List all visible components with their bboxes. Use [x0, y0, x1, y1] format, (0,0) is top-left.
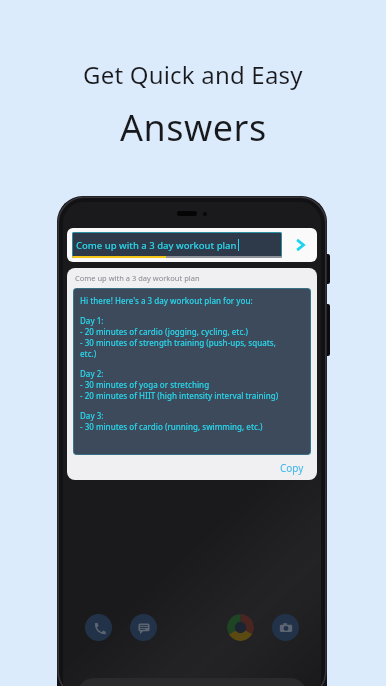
staticText: Hi there! Here's a 3 day workout plan fo… — [80, 295, 253, 306]
button[interactable]: Send — [288, 233, 312, 257]
button[interactable]: Search — [77, 678, 307, 686]
staticText: - 20 minutes of cardio (jogging, cycling… — [80, 326, 248, 337]
button[interactable]: Copy — [277, 458, 307, 478]
staticText: Day 1: — [80, 315, 104, 326]
staticText: - 20 minutes of HIIT (high intensity int… — [80, 390, 279, 401]
staticText: Day 2: — [80, 368, 104, 379]
staticText: Copy — [280, 461, 304, 475]
button[interactable]: Chrome — [227, 614, 254, 641]
staticText: Get Quick and Easy — [83, 58, 303, 91]
button[interactable]: Phone — [85, 614, 112, 641]
staticText: - 30 minutes of strength training (push-… — [80, 337, 276, 348]
button[interactable]: Messages — [130, 614, 157, 641]
button[interactable]: Come up with a 3 day workout plan — [67, 228, 317, 262]
staticText: - 30 minutes of yoga or stretching — [80, 379, 210, 390]
button[interactable]: Camera — [272, 614, 299, 641]
staticText: Come up with a 3 day workout plan — [76, 239, 237, 252]
staticText: Come up with a 3 day workout plan — [75, 273, 200, 283]
staticText: - 30 minutes of cardio (running, swimmin… — [80, 421, 263, 432]
staticText: Day 3: — [80, 410, 104, 421]
staticText: etc.) — [80, 348, 97, 359]
staticText: Answers — [120, 103, 267, 152]
